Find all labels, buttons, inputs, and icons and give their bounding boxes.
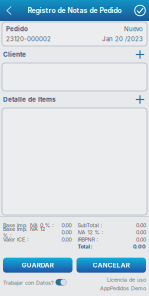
staticText: Nuevo <box>124 25 143 33</box>
staticText: IRBPNR : <box>77 236 98 243</box>
staticText: GUARDAR <box>22 261 54 269</box>
button[interactable]: GUARDAR <box>3 258 72 273</box>
staticText: 0.00 <box>61 236 71 243</box>
staticText: CANCELAR <box>93 261 130 269</box>
staticText: 0.00 <box>136 236 146 243</box>
staticText: 0.00 <box>136 222 146 228</box>
staticText: 23120-000002 <box>6 35 51 43</box>
staticText: 0.00 <box>136 229 146 236</box>
staticText: Base Imp. IVA 0 % : <box>3 222 54 228</box>
staticText: Cliente <box>3 51 26 58</box>
button[interactable]: Trabajar con Datos <box>54 278 68 287</box>
staticText: Total : <box>77 243 92 250</box>
staticText: Base Imp. IVA 12 % : <box>3 226 45 239</box>
staticText: Pedido <box>6 25 28 33</box>
button[interactable]: Add Cliente <box>133 46 147 62</box>
staticText: Valor ICE : <box>3 236 29 243</box>
button[interactable]: Confirm <box>131 0 149 21</box>
staticText: Trabajar con Datos? <box>3 280 54 286</box>
staticText: 0.00 <box>61 229 71 236</box>
staticText: Detalle de Items <box>3 96 56 103</box>
staticText: Licencia de uso <box>107 277 146 283</box>
staticText: 0.00 <box>133 243 146 250</box>
staticText: IVA 12 % : <box>77 229 103 236</box>
button[interactable]: Back <box>0 0 18 21</box>
staticText: AppPedidos Demo <box>100 285 146 292</box>
staticText: Jan 20 /2023 <box>102 35 143 43</box>
button[interactable]: CANCELAR <box>76 258 146 273</box>
button[interactable]: Add Detalle de Items <box>133 91 147 107</box>
staticText: SubTotal : <box>77 222 102 228</box>
staticText: Registro de Notas de Pedido <box>27 6 121 15</box>
staticText: 0.00 <box>61 222 71 228</box>
